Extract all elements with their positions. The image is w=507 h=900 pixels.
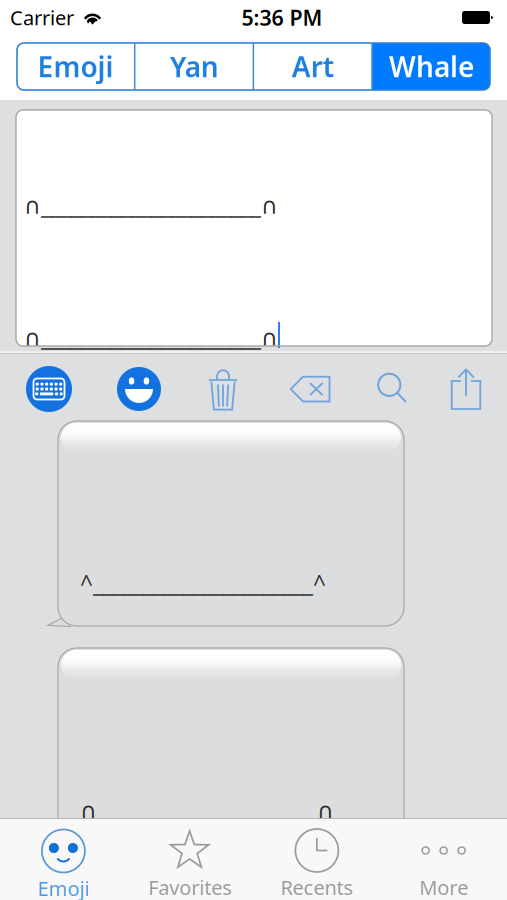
button[interactable]: Yan [136,43,253,90]
button[interactable]: More [380,819,507,900]
staticText: Carrier [10,4,74,31]
button[interactable]: Delete [279,358,341,420]
button[interactable]: Favorites [127,819,254,900]
staticText: ∩______________________∩ [80,795,334,825]
staticText: ^______________________^ [80,568,326,598]
staticText: Art [292,48,334,85]
button[interactable]: Emoji keyboard [108,358,170,420]
staticText: 5:36 PM [241,3,322,32]
staticText: Emoji [37,48,113,85]
staticText: Whale [389,48,474,85]
button[interactable]: Recents [253,819,380,900]
staticText: Recents [280,874,353,900]
staticText: More [419,874,468,900]
button[interactable]: Share [435,358,497,420]
button[interactable]: Search [361,357,423,419]
button[interactable]: Whale [373,43,490,90]
button[interactable]: Art [254,43,371,90]
staticText: ∩______________________∩ [24,322,278,352]
button[interactable]: Clear text [192,361,254,423]
button[interactable]: Emoji [0,819,127,900]
staticText: Emoji [37,875,89,900]
staticText: ∩______________________∩ [24,190,278,220]
staticText: Yan [170,48,219,85]
button[interactable]: Keyboard [18,358,80,420]
staticText: Favorites [148,874,232,900]
button[interactable]: Emoji [17,43,134,90]
